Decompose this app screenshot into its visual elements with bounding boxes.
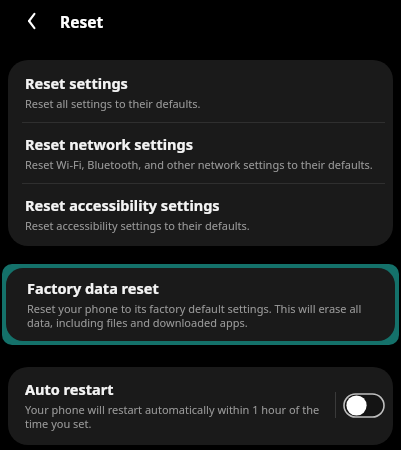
- button[interactable]: Reset network settings: [8, 123, 393, 183]
- button[interactable]: Factory data reset: [6, 268, 395, 341]
- staticText: Reset accessibility settings to their de…: [25, 218, 250, 233]
- staticText: Reset: [60, 11, 104, 32]
- staticText: Reset accessibility settings: [25, 195, 220, 215]
- staticText: Auto restart: [25, 379, 114, 399]
- button[interactable]: Back: [19, 7, 47, 35]
- staticText: Reset all settings to their defaults.: [25, 96, 201, 111]
- staticText: Reset Wi‑Fi, Bluetooth, and other networ…: [25, 157, 373, 172]
- staticText: Your phone will restart automatically wi…: [25, 402, 329, 431]
- staticText: Reset your phone to its factory default …: [27, 301, 379, 330]
- button[interactable]: Reset accessibility settings: [8, 184, 393, 244]
- button[interactable]: Auto restart: [8, 367, 393, 445]
- button[interactable]: Reset settings: [8, 62, 393, 122]
- button[interactable]: Auto restart toggle, off: [341, 390, 387, 420]
- staticText: Reset settings: [25, 73, 128, 93]
- staticText: Reset network settings: [25, 134, 193, 154]
- staticText: Factory data reset: [27, 278, 159, 298]
